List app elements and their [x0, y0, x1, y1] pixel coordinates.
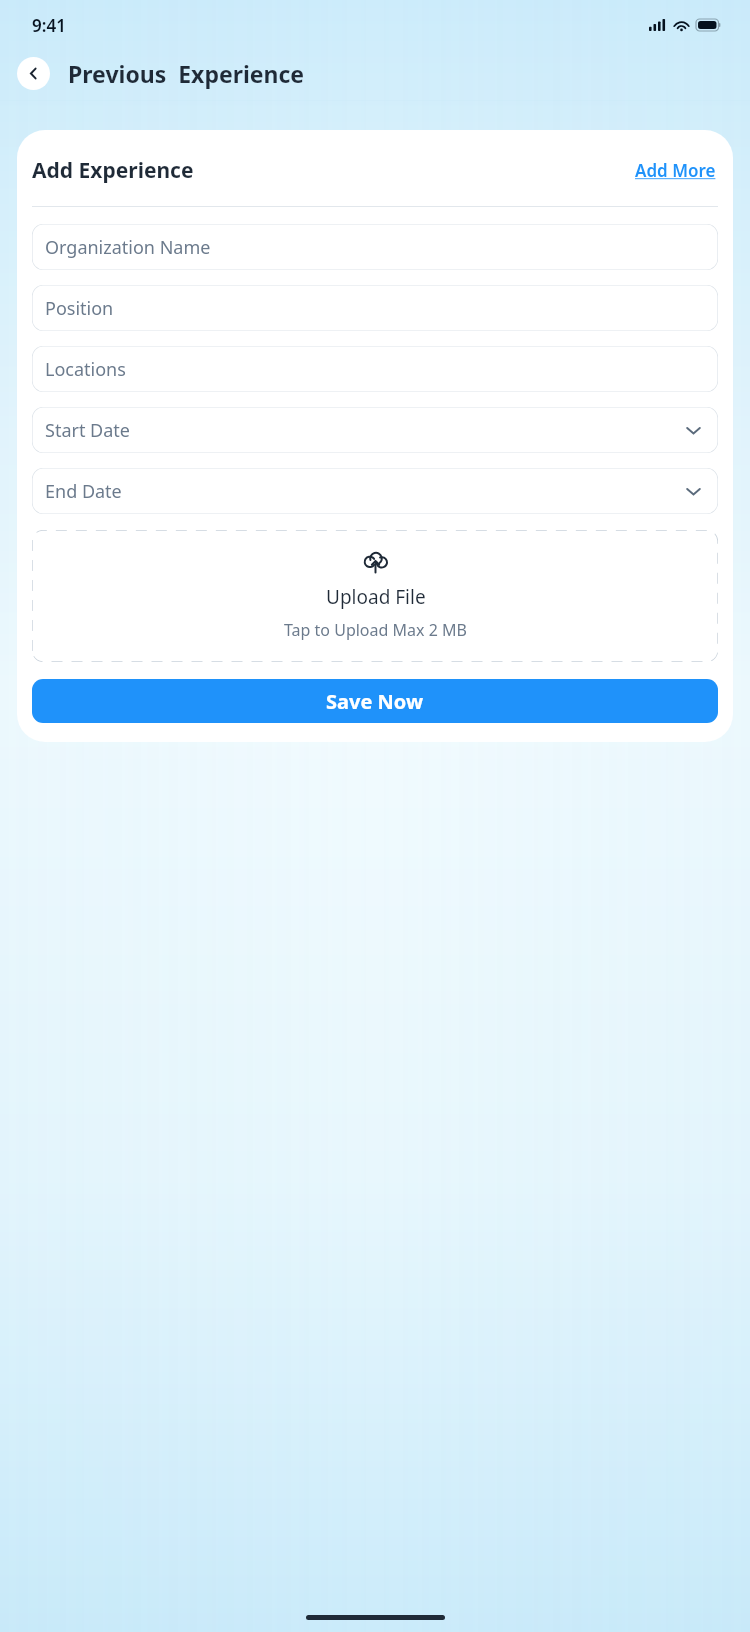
button[interactable]: Locations — [32, 346, 718, 392]
staticText: Add Experience — [32, 156, 194, 185]
staticText: Add More — [635, 159, 716, 182]
staticText: Start Date — [45, 418, 130, 443]
button[interactable]: Upload File, tap to upload max 2 MB — [32, 530, 718, 662]
button[interactable]: End Date — [32, 468, 718, 514]
staticText: Locations — [45, 357, 126, 382]
button[interactable]: Back — [17, 57, 50, 90]
other: Open End Date picker — [684, 482, 702, 500]
staticText: Position — [45, 296, 114, 321]
staticText: Previous Experience — [68, 58, 305, 89]
staticText: Tap to Upload Max 2 MB — [284, 619, 467, 641]
button[interactable]: Add More — [633, 157, 718, 184]
button[interactable]: Position — [32, 285, 718, 331]
button[interactable]: Organization Name — [32, 224, 718, 270]
other: Open Start Date picker — [684, 421, 702, 439]
staticText: 9:41 — [32, 14, 66, 37]
button[interactable]: Save Now — [32, 679, 718, 723]
staticText: Save Now — [326, 688, 424, 715]
button[interactable]: Start Date — [32, 407, 718, 453]
staticText: Organization Name — [45, 235, 211, 260]
staticText: Upload File — [326, 584, 426, 610]
staticText: End Date — [45, 479, 122, 504]
